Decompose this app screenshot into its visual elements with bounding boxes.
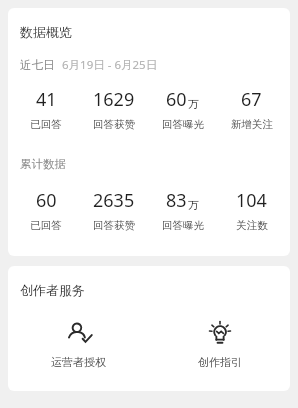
staticText: 万 bbox=[188, 97, 199, 111]
staticText: 104 bbox=[236, 188, 267, 213]
button[interactable]: 60 bbox=[12, 186, 80, 234]
staticText: 2635 bbox=[93, 188, 135, 213]
staticText: 1629 bbox=[93, 87, 135, 112]
staticText: 已回答 bbox=[30, 118, 62, 131]
staticText: 回答获赞 bbox=[93, 219, 135, 232]
staticText: 83 bbox=[166, 188, 187, 213]
staticText: 累计数据 bbox=[20, 157, 66, 171]
staticText: 41 bbox=[36, 87, 57, 112]
staticText: 数据概览 bbox=[20, 24, 72, 40]
staticText: 创作指引 bbox=[198, 355, 242, 369]
staticText: 万 bbox=[188, 198, 199, 212]
staticText: 运营者授权 bbox=[51, 355, 106, 369]
button[interactable]: 运营者授权 bbox=[8, 318, 149, 371]
staticText: 60 bbox=[166, 87, 187, 112]
staticText: 6月19日 - 6月25日 bbox=[62, 57, 158, 73]
staticText: 创作者服务 bbox=[20, 282, 85, 298]
staticText: 回答曝光 bbox=[162, 219, 204, 232]
button[interactable]: 2635 bbox=[80, 186, 148, 234]
staticText: 关注数 bbox=[236, 219, 268, 232]
button[interactable]: 104 bbox=[217, 186, 286, 234]
staticText: 67 bbox=[241, 87, 262, 112]
button[interactable]: 41 bbox=[12, 85, 80, 133]
button[interactable]: 60 bbox=[148, 85, 217, 133]
staticText: 回答获赞 bbox=[93, 118, 135, 131]
button[interactable]: 67 bbox=[217, 85, 286, 133]
staticText: 60 bbox=[36, 188, 57, 213]
other: 创作指引 bbox=[207, 320, 233, 346]
staticText: 已回答 bbox=[30, 219, 62, 232]
button[interactable]: 创作指引 bbox=[149, 318, 290, 371]
staticText: 回答曝光 bbox=[162, 118, 204, 131]
staticText: 新增关注 bbox=[231, 118, 273, 131]
button[interactable]: 83 bbox=[148, 186, 217, 234]
other: 运营者授权 bbox=[66, 320, 92, 346]
staticText: 近七日 bbox=[20, 58, 55, 72]
button[interactable]: 1629 bbox=[80, 85, 148, 133]
